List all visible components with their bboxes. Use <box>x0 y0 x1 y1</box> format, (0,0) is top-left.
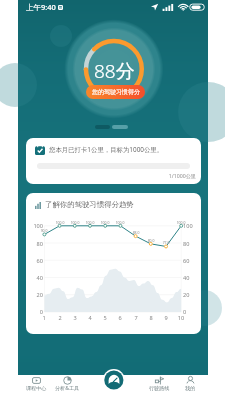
staticText: 80.0 <box>144 238 158 243</box>
staticText: 0 <box>183 308 199 316</box>
staticText: 100.0 <box>98 220 112 225</box>
staticText: 100.0 <box>53 220 67 225</box>
button[interactable]: 您的驾驶习惯得分 <box>86 85 145 99</box>
staticText: 分析&工具 <box>55 385 80 392</box>
staticText: 0 <box>26 308 43 316</box>
staticText: 40 <box>183 274 199 282</box>
staticText: 20 <box>26 291 43 299</box>
staticText: 77.0 <box>159 240 173 245</box>
staticText: 88.0 <box>129 230 143 235</box>
staticText: 100.0 <box>68 220 82 225</box>
staticText: 10 <box>175 314 187 322</box>
staticText: 课程中心 <box>26 385 47 391</box>
staticText: 90.0 <box>37 228 51 233</box>
staticText: 6 <box>114 314 126 322</box>
staticText: 80 <box>183 240 199 248</box>
staticText: 上午9:40 <box>26 2 56 12</box>
staticText: 1/1000公里 <box>26 172 196 179</box>
button[interactable]: 分析&工具 <box>50 374 84 400</box>
staticText: 我的 <box>185 385 196 391</box>
staticText: 100.0 <box>113 220 127 225</box>
staticText: 1 <box>38 314 50 322</box>
staticText: 2 <box>54 314 66 322</box>
button[interactable]: 开始行程 <box>103 369 125 391</box>
button[interactable]: 课程中心 <box>19 374 53 400</box>
staticText: 9 <box>160 314 172 322</box>
staticText: 60 <box>183 257 199 265</box>
button[interactable]: 您本月已打卡1公里，目标为1000公里。 <box>26 138 201 184</box>
staticText: 100.0 <box>83 220 97 225</box>
staticText: 100 <box>183 222 199 230</box>
staticText: 7 <box>130 314 142 322</box>
staticText: 8 <box>145 314 157 322</box>
staticText: 4 <box>84 314 96 322</box>
staticText: 行驶路线 <box>149 385 170 391</box>
staticText: 您本月已打卡1公里，目标为1000公里。 <box>49 145 164 154</box>
staticText: 您的驾驶习惯得分 <box>92 88 140 96</box>
staticText: 100.0 <box>174 220 188 225</box>
staticText: 3 <box>69 314 81 322</box>
staticText: 88分 <box>94 58 135 84</box>
staticText: 80 <box>26 240 43 248</box>
button[interactable]: 行驶路线 <box>142 374 176 400</box>
staticText: 5 <box>99 314 111 322</box>
staticText: 60 <box>26 257 43 265</box>
staticText: 20 <box>183 291 199 299</box>
staticText: 100 <box>26 222 43 230</box>
staticText: 了解你的驾驶习惯得分趋势 <box>45 200 134 209</box>
button[interactable]: 我的 <box>173 374 207 400</box>
staticText: 40 <box>26 274 43 282</box>
